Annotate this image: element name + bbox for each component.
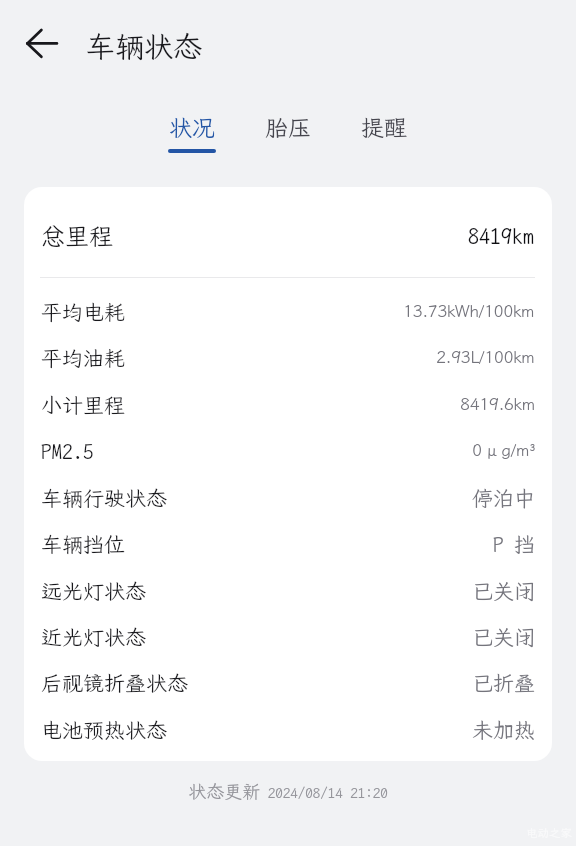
- button[interactable]: 车辆行驶状态: [24, 476, 552, 522]
- staticText: 胎压: [265, 115, 311, 142]
- button[interactable]: 小计里程: [24, 383, 552, 429]
- staticText: 已关闭: [472, 626, 535, 651]
- staticText: 电池预热状态: [41, 719, 167, 744]
- staticText: 13.73kWh/100km: [403, 299, 535, 321]
- button[interactable]: 胎压: [264, 112, 312, 154]
- button[interactable]: 总里程: [24, 187, 552, 287]
- staticText: 平均油耗: [41, 347, 125, 372]
- staticText: 车辆状态: [86, 30, 203, 64]
- button[interactable]: PM2.5: [24, 429, 552, 475]
- staticText: 小计里程: [41, 394, 125, 419]
- staticText: 已关闭: [472, 580, 535, 605]
- button[interactable]: 状况: [168, 112, 216, 154]
- button[interactable]: 电池预热状态: [24, 708, 552, 754]
- button[interactable]: 近光灯状态: [24, 615, 552, 661]
- button[interactable]: 远光灯状态: [24, 569, 552, 615]
- staticText: 提醒: [361, 115, 407, 142]
- button[interactable]: 提醒: [360, 112, 408, 154]
- staticText: 未加热: [472, 719, 535, 744]
- staticText: 0 μ g/m³: [472, 438, 535, 460]
- staticText: 2.93L/100km: [436, 345, 535, 367]
- button[interactable]: 后视镜折叠状态: [24, 661, 552, 707]
- staticText: 车辆行驶状态: [41, 487, 167, 512]
- staticText: 状态更新 2024/08/14 21:20: [0, 781, 576, 802]
- staticText: 8419.6km: [460, 392, 535, 414]
- staticText: 已折叠: [472, 672, 535, 697]
- staticText: PM2.5: [41, 440, 94, 465]
- button[interactable]: 平均电耗: [24, 290, 552, 336]
- staticText: 8419km: [468, 224, 535, 250]
- staticText: 总里程: [41, 223, 113, 251]
- staticText: 停泊中: [472, 487, 535, 512]
- staticText: 后视镜折叠状态: [41, 672, 188, 697]
- staticText: 状况: [169, 115, 215, 142]
- staticText: 近光灯状态: [41, 626, 146, 651]
- button[interactable]: 平均油耗: [24, 336, 552, 382]
- staticText: P 挡: [493, 533, 535, 558]
- staticText: 远光灯状态: [41, 580, 146, 605]
- button[interactable]: 车辆挡位: [24, 522, 552, 568]
- staticText: 平均电耗: [41, 301, 125, 326]
- staticText: 车辆挡位: [41, 533, 125, 558]
- button[interactable]: Back: [14, 18, 66, 70]
